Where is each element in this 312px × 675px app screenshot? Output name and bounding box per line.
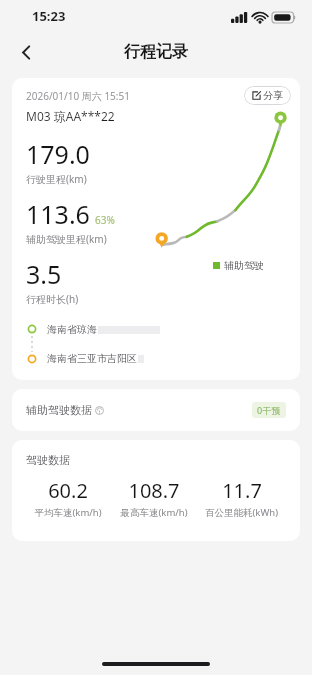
staticText: 最高车速(km/h) bbox=[120, 506, 188, 519]
staticText: 179.0 bbox=[26, 137, 90, 171]
staticText: 行程时长(h) bbox=[26, 292, 79, 306]
staticText: 平均车速(km/h) bbox=[34, 506, 102, 519]
staticText: 60.2 bbox=[48, 477, 88, 504]
button[interactable]: 辅助驾驶数据 bbox=[12, 389, 300, 431]
staticText: 0干预 bbox=[257, 404, 281, 416]
staticText: M03 琼AA***22 bbox=[26, 108, 115, 124]
staticText: 行驶里程(km) bbox=[26, 172, 87, 186]
staticText: 63% bbox=[95, 213, 115, 227]
staticText: 3.5 bbox=[26, 257, 62, 291]
staticText: 海南省琼海 bbox=[47, 323, 97, 336]
staticText: 百公里能耗(kWh) bbox=[205, 506, 278, 519]
button[interactable]: Back bbox=[8, 34, 44, 70]
staticText: 11.7 bbox=[222, 477, 262, 504]
staticText: 海南省三亚市吉阳区 bbox=[47, 352, 137, 365]
staticText: 113.6 bbox=[26, 197, 90, 231]
staticText: 行程记录 bbox=[124, 42, 188, 62]
staticText: 辅助驾驶里程(km) bbox=[26, 232, 107, 246]
staticText: 辅助驾驶数据 bbox=[26, 403, 92, 417]
button[interactable]: 分享 bbox=[244, 86, 291, 105]
staticText: 分享 bbox=[263, 89, 283, 102]
staticText: 驾驶数据 bbox=[26, 453, 70, 467]
staticText: 辅助驾驶 bbox=[224, 259, 264, 272]
staticText: 2026/01/10 周六 15:51 bbox=[26, 89, 130, 103]
staticText: 15:23 bbox=[32, 7, 66, 25]
staticText: 108.7 bbox=[128, 477, 180, 504]
